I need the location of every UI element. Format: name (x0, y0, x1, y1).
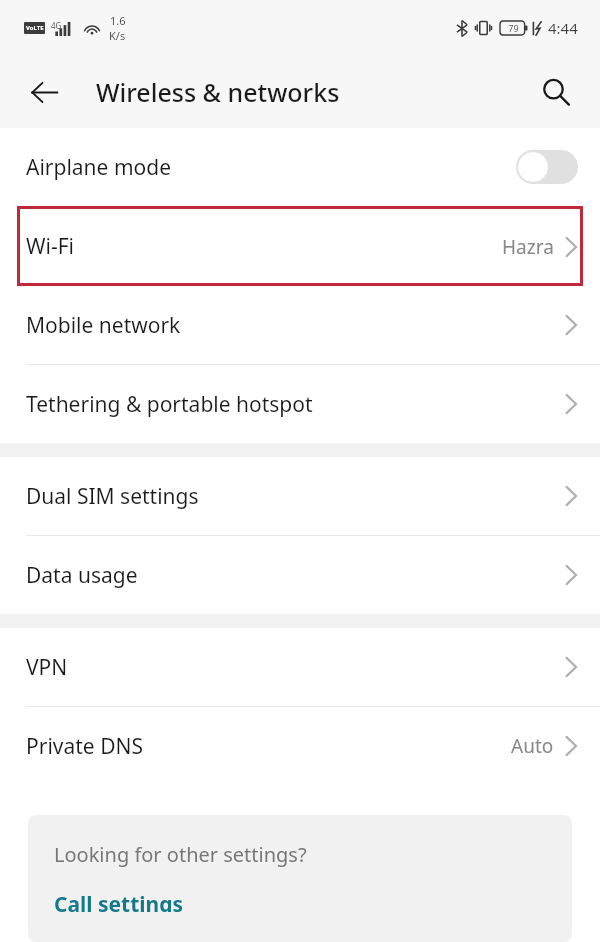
staticText: Looking for other settings? (54, 841, 307, 868)
staticText: 79 (508, 22, 519, 34)
button[interactable]: Looking for other settings? (28, 815, 572, 942)
staticText: Wireless & networks (96, 75, 340, 109)
button[interactable]: Private DNS (0, 707, 600, 785)
button[interactable]: Tethering & portable hotspot (0, 365, 600, 443)
staticText: VoLTE (26, 24, 44, 32)
button[interactable]: Call settings (54, 890, 184, 912)
staticText: K/s (109, 28, 126, 43)
button[interactable]: Search (530, 66, 582, 118)
staticText: Private DNS (26, 732, 143, 761)
staticText: VPN (26, 653, 68, 682)
button[interactable]: Dual SIM settings (0, 457, 600, 535)
button[interactable]: Airplane mode (0, 128, 600, 206)
button[interactable]: Wi-Fi (17, 206, 583, 286)
staticText: Auto (511, 733, 554, 759)
staticText: Tethering & portable hotspot (26, 390, 313, 419)
staticText: Data usage (26, 561, 138, 590)
staticText: Airplane mode (26, 153, 172, 182)
staticText: 4G (51, 20, 62, 31)
button[interactable]: Data usage (0, 536, 600, 614)
staticText: Hazra (502, 234, 554, 260)
staticText: 4:44 (548, 18, 578, 38)
staticText: Mobile network (26, 311, 181, 340)
button[interactable]: Airplane mode toggle (516, 150, 578, 184)
staticText: Dual SIM settings (26, 482, 199, 511)
staticText: 1.6 (110, 13, 126, 28)
button[interactable]: VPN (0, 628, 600, 706)
button[interactable]: Mobile network (0, 286, 600, 364)
staticText: Wi-Fi (26, 232, 75, 261)
button[interactable]: Back (18, 66, 70, 118)
